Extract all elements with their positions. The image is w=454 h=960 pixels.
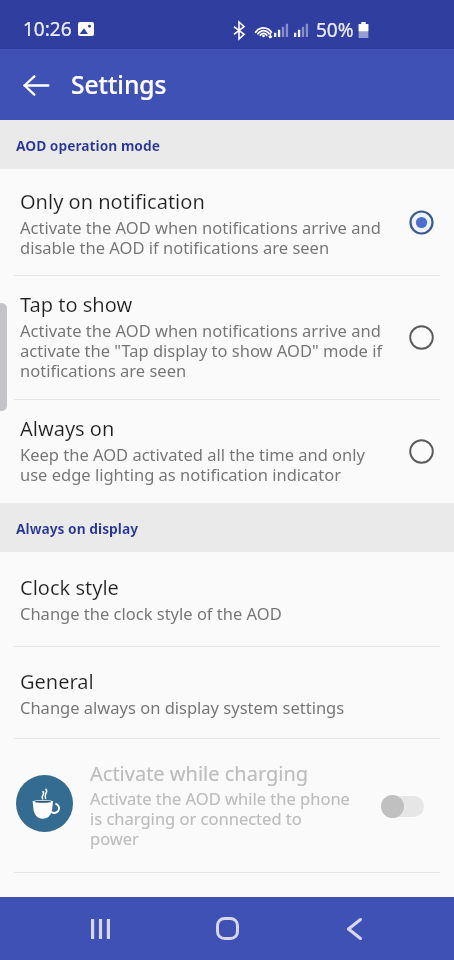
staticText: Clock style <box>20 574 119 601</box>
button[interactable]: Recent apps <box>36 897 164 960</box>
staticText: Only on notification <box>20 188 205 215</box>
staticText: 50% <box>316 17 354 43</box>
staticText: AOD operation mode <box>16 136 160 155</box>
button[interactable]: Home <box>164 897 291 960</box>
button[interactable]: General <box>0 647 454 738</box>
button[interactable]: Navigate up <box>10 59 62 111</box>
staticText: Settings <box>71 68 167 101</box>
staticText: Change always on display system settings <box>20 696 345 718</box>
staticText: Always on <box>20 415 115 442</box>
button[interactable]: Activate while charging toggle <box>381 793 424 819</box>
staticText: Activate the AOD when notifications arri… <box>20 216 381 259</box>
button[interactable]: Caffeine <box>16 775 73 832</box>
button[interactable]: Activate while charging <box>0 739 454 872</box>
button[interactable]: Clock style <box>0 552 454 646</box>
staticText: Tap to show <box>20 291 133 318</box>
staticText: Always on display <box>16 519 139 538</box>
staticText: General <box>20 668 94 695</box>
button[interactable]: Tap to show <box>0 276 454 399</box>
button[interactable]: Always on <box>0 400 454 503</box>
button[interactable]: Only on notification <box>0 169 454 275</box>
staticText: Change the clock style of the AOD <box>20 602 282 624</box>
staticText: 10:26 <box>23 16 72 42</box>
button[interactable]: Back <box>291 897 418 960</box>
staticText: Activate while charging <box>90 760 309 787</box>
staticText: Activate the AOD while the phone is char… <box>90 787 350 850</box>
staticText: Activate the AOD when notifications arri… <box>20 319 383 382</box>
staticText: Keep the AOD activated all the time and … <box>20 443 365 486</box>
